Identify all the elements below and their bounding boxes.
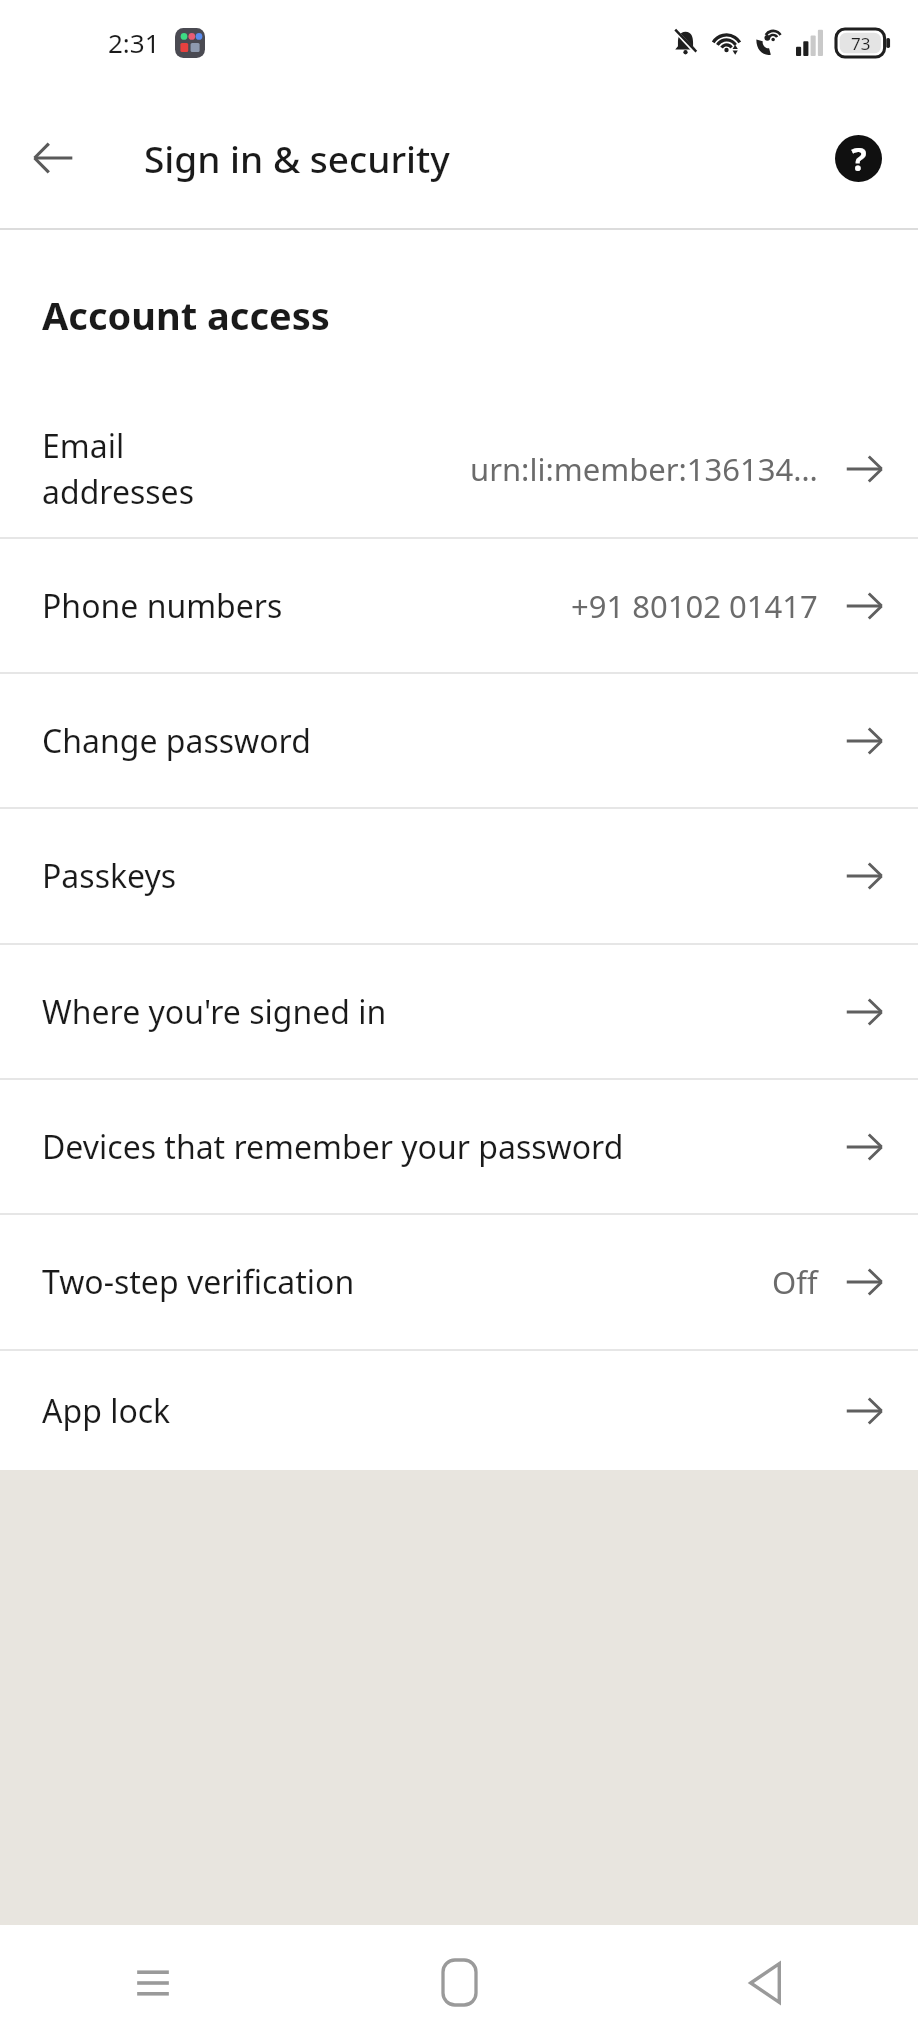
staticText: Devices that remember your password bbox=[42, 1125, 624, 1169]
staticText: Phone numbers bbox=[42, 584, 283, 628]
button[interactable]: Help bbox=[822, 122, 894, 194]
staticText: urn:li:member:136134… bbox=[470, 448, 818, 490]
button[interactable]: Recent apps bbox=[0, 1925, 306, 2040]
button[interactable]: Where you're signed in bbox=[0, 945, 918, 1078]
staticText: Account access bbox=[42, 289, 330, 341]
staticText: 2:31 bbox=[108, 25, 160, 60]
button[interactable]: Passkeys bbox=[0, 809, 918, 943]
staticText: Off bbox=[772, 1261, 818, 1303]
button[interactable]: Change password bbox=[0, 674, 918, 807]
button[interactable]: App lock bbox=[0, 1351, 918, 1470]
staticText: Two-step verification bbox=[42, 1260, 355, 1304]
button[interactable]: Back bbox=[14, 119, 92, 197]
button[interactable]: Two-step verification bbox=[0, 1215, 918, 1349]
staticText: Change password bbox=[42, 719, 311, 763]
staticText: Email addresses bbox=[42, 424, 302, 513]
button[interactable]: Devices that remember your password bbox=[0, 1080, 918, 1213]
staticText: Passkeys bbox=[42, 854, 177, 898]
button[interactable]: Home bbox=[306, 1925, 612, 2040]
staticText: Where you're signed in bbox=[42, 990, 387, 1034]
staticText: App lock bbox=[42, 1389, 171, 1433]
button[interactable]: Phone numbers bbox=[0, 539, 918, 672]
staticText: 73 bbox=[851, 32, 871, 55]
staticText: ? bbox=[851, 137, 867, 181]
button[interactable]: Back bbox=[612, 1925, 918, 2040]
staticText: +91 80102 01417 bbox=[571, 585, 818, 627]
staticText: Sign in & security bbox=[144, 133, 450, 183]
button[interactable]: Email addresses bbox=[0, 400, 918, 537]
